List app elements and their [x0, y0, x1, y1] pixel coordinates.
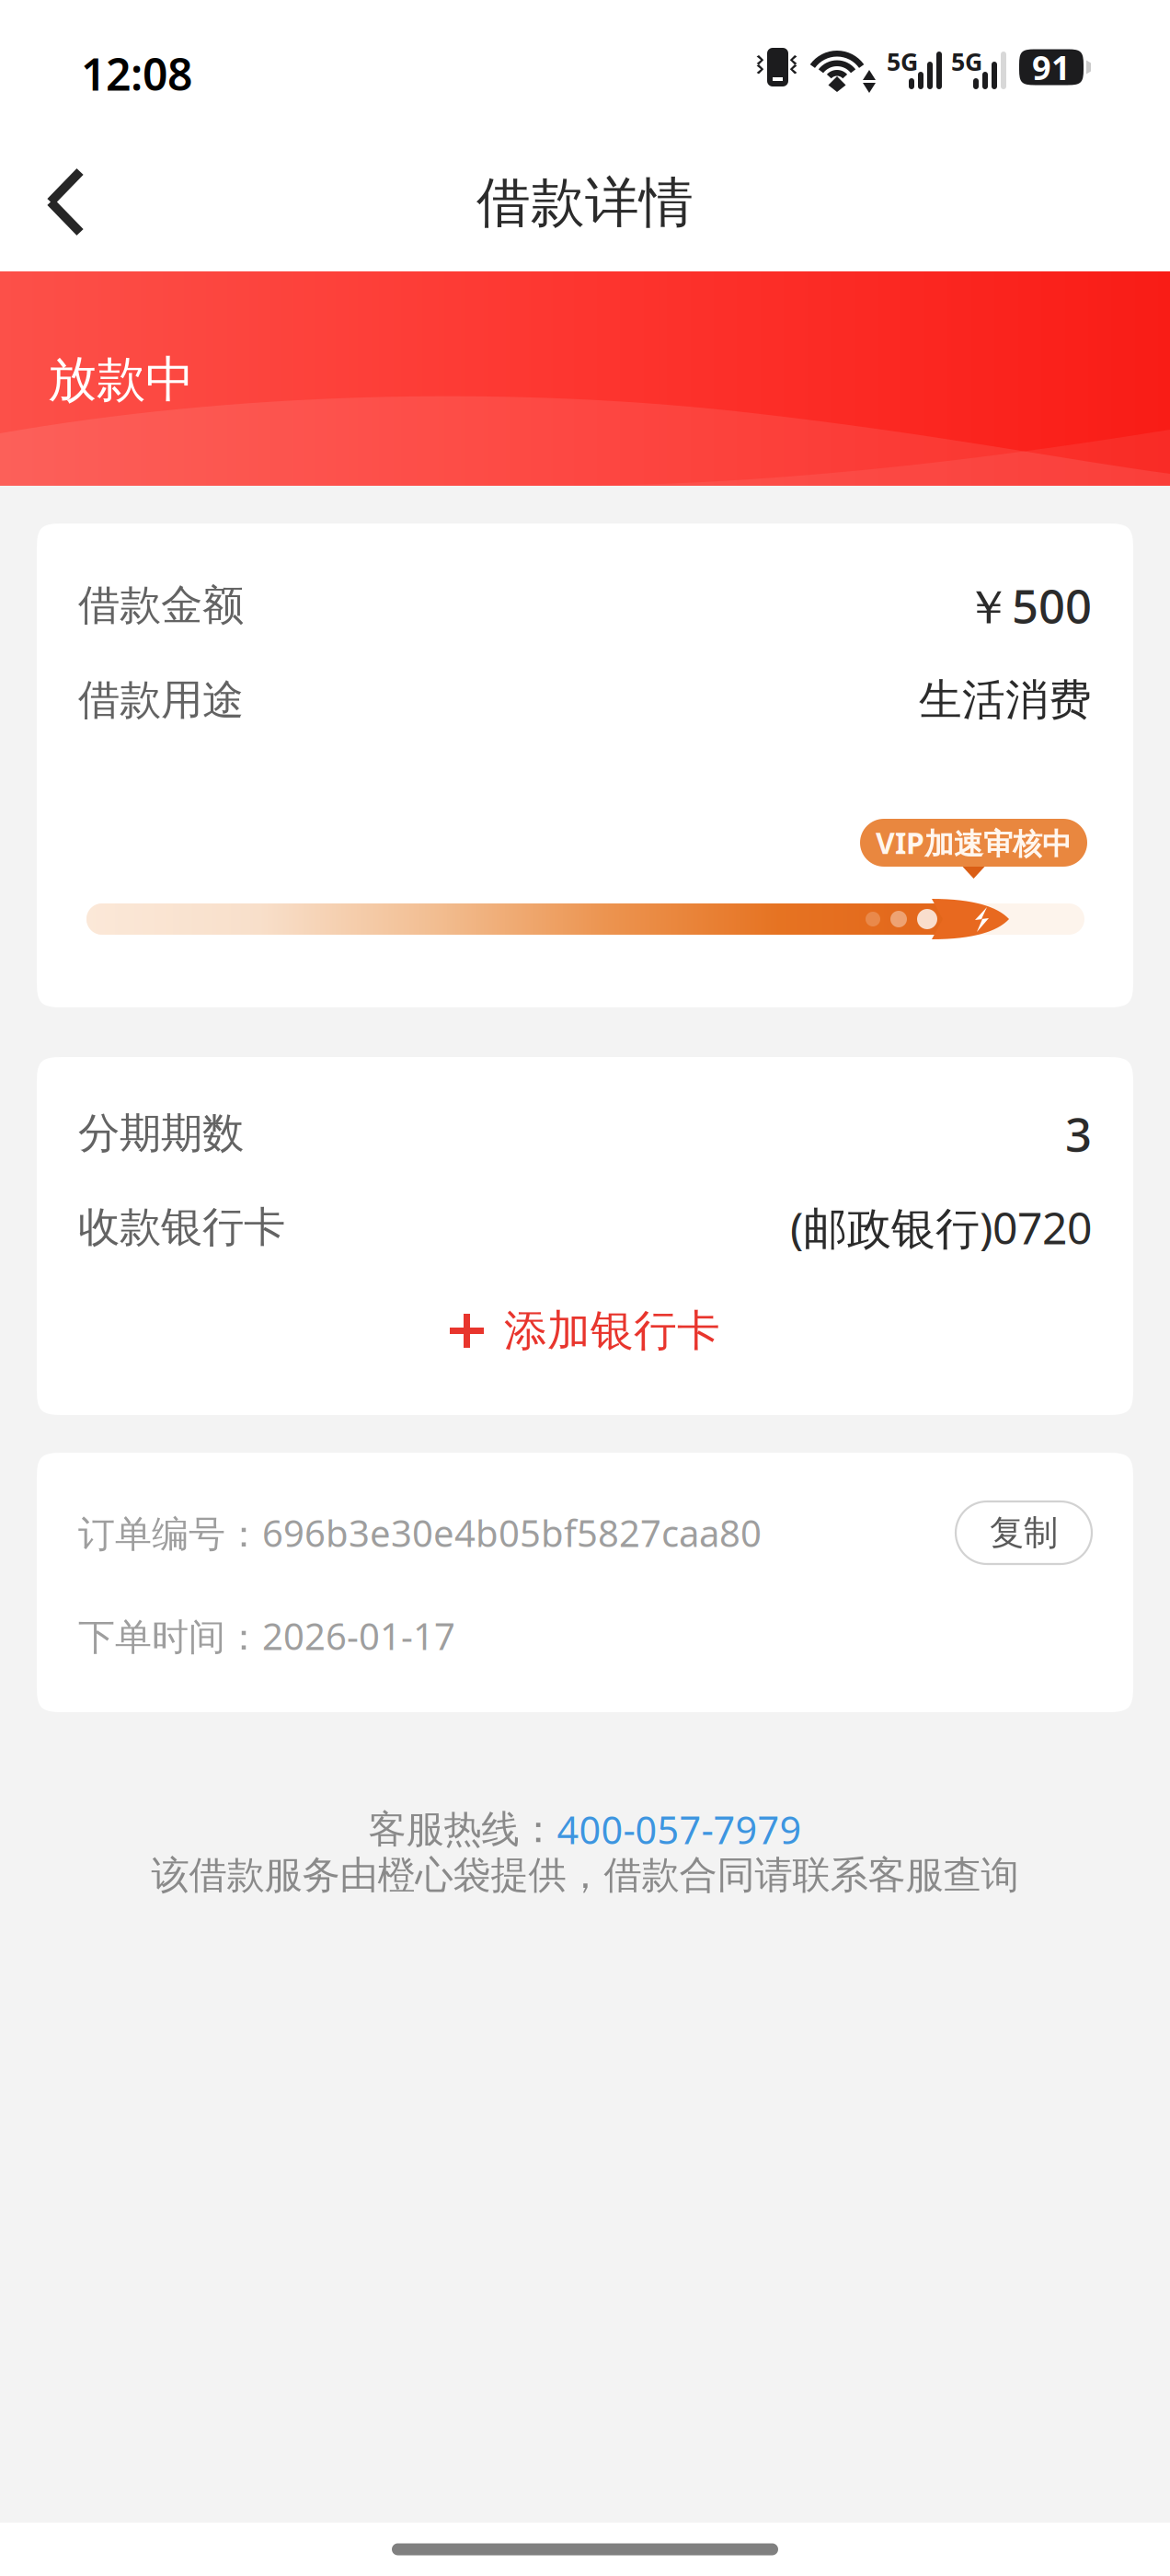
staticText: 添加银行卡 — [504, 1304, 720, 1357]
staticText: 91 — [1032, 45, 1071, 89]
staticText: 借款详情 — [476, 170, 694, 236]
staticText: 该借款服务由橙心袋提供，借款合同请联系客服查询 — [151, 1852, 1019, 1899]
staticText: 400-057-7979 — [557, 1804, 802, 1855]
staticText: (邮政银行)0720 — [790, 1198, 1092, 1257]
button[interactable]: 添加银行卡 — [78, 1303, 1092, 1359]
staticText: VIP加速审核中 — [876, 823, 1072, 862]
staticText: 订单编号：696b3e30e4b05bf5827caa80 — [78, 1508, 762, 1557]
staticText: 5G — [887, 45, 918, 78]
staticText: 下单时间：2026-01-17 — [78, 1611, 455, 1660]
button[interactable]: 复制 — [956, 1501, 1092, 1564]
staticText: 分期期数 — [78, 1108, 244, 1159]
staticText: 生活消费 — [919, 674, 1092, 726]
staticText: 12:08 — [81, 44, 192, 103]
staticText: 借款用途 — [78, 675, 244, 726]
staticText: 客服热线： — [368, 1806, 557, 1853]
staticText: 收款银行卡 — [78, 1202, 285, 1253]
staticText: 借款金额 — [78, 580, 244, 631]
staticText: 3 — [1065, 1103, 1092, 1164]
staticText: 放款中 — [48, 350, 194, 410]
staticText: 复制 — [990, 1512, 1058, 1554]
button[interactable]: 400-057-7979 — [557, 1804, 802, 1855]
staticText: ￥500 — [965, 574, 1092, 636]
button[interactable]: Back — [0, 148, 110, 258]
staticText: 5G — [951, 45, 982, 78]
